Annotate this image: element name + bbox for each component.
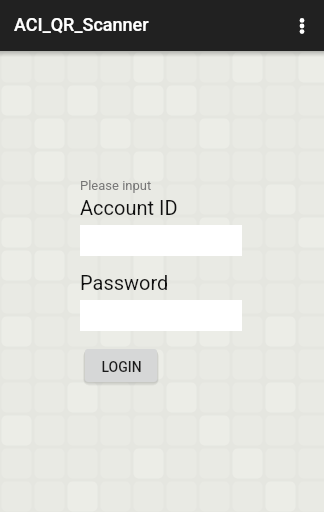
staticText: Please input [80,178,152,193]
staticText: Password [80,271,169,294]
staticText: Account ID [80,196,178,219]
staticText: LOGIN [101,359,142,375]
button[interactable]: LOGIN [85,349,157,382]
button[interactable]: More options [282,6,322,46]
staticText: ACI_QR_Scanner [14,14,149,35]
